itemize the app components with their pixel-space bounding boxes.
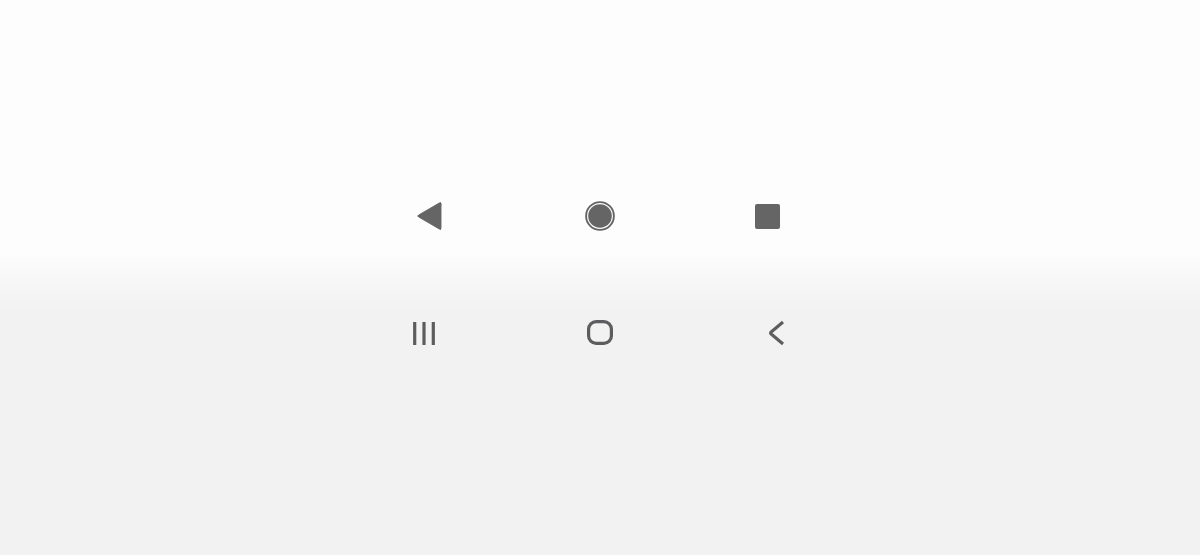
button[interactable]: Back	[405, 192, 453, 240]
button[interactable]: Home	[576, 192, 624, 240]
button[interactable]: Recent apps	[400, 309, 448, 357]
button[interactable]: Home	[576, 308, 624, 356]
button[interactable]: Back	[752, 309, 800, 357]
button[interactable]: Recent apps	[743, 192, 791, 240]
